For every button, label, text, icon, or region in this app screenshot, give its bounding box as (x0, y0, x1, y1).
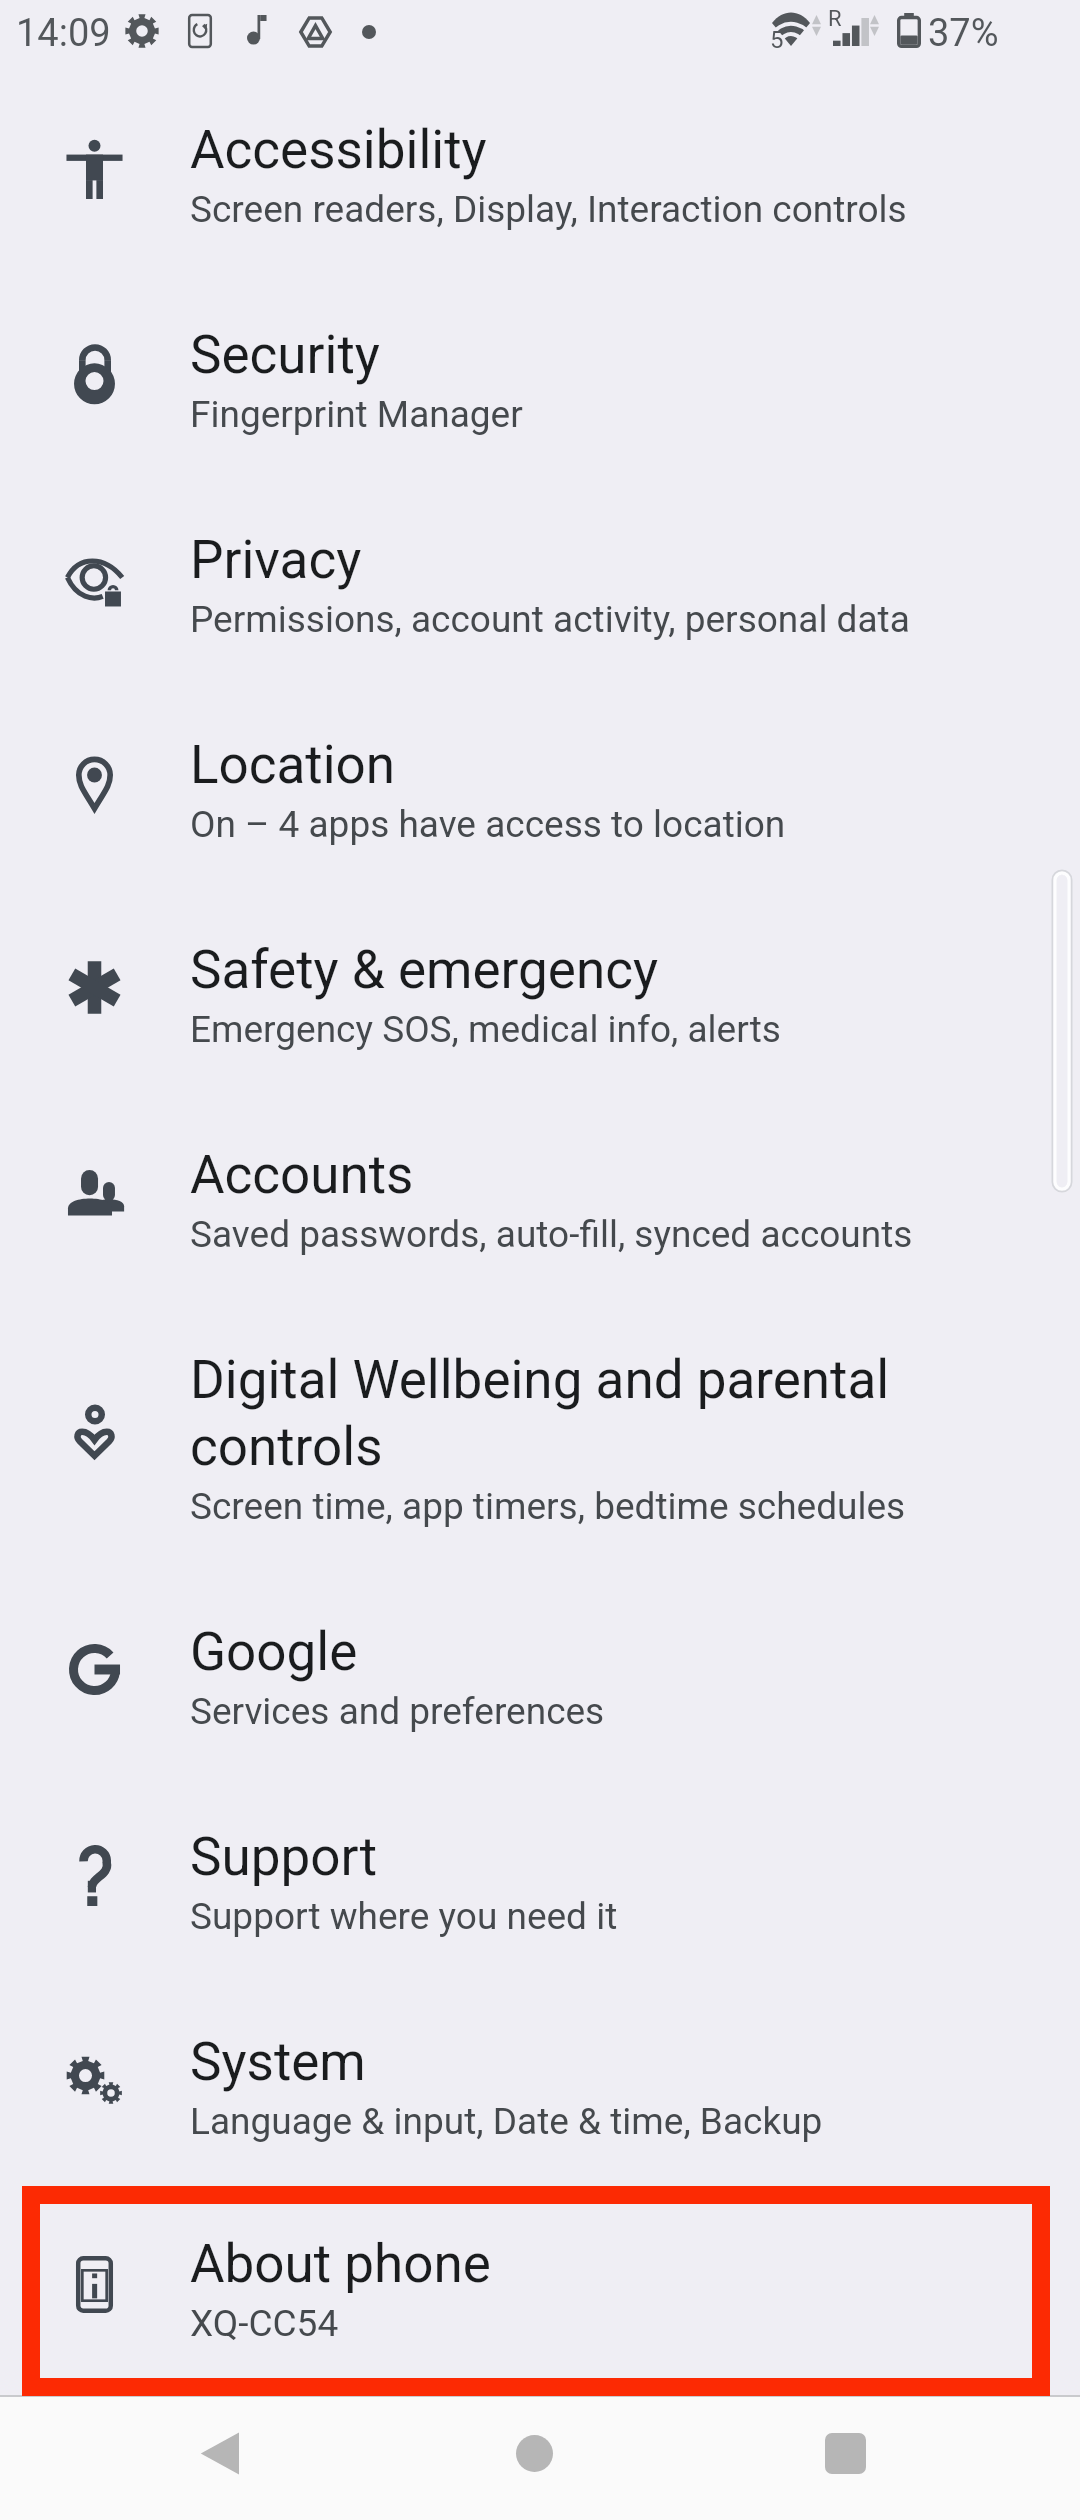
button[interactable]: Recents (795, 2403, 895, 2503)
button[interactable]: Digital Wellbeing and parental controls (0, 1301, 1080, 1573)
staticText: 14:09 (16, 11, 111, 56)
button[interactable]: Security (0, 276, 1080, 481)
staticText: Support (190, 1822, 906, 1889)
staticText: Safety & emergency (190, 935, 906, 1002)
button[interactable]: Accounts (0, 1096, 1080, 1301)
button[interactable]: Location (0, 686, 1080, 891)
button[interactable]: About phone (0, 2188, 1080, 2386)
staticText: Permissions, account activity, personal … (190, 592, 910, 642)
staticText: Google (190, 1617, 906, 1684)
staticText: Location (190, 730, 906, 797)
staticText: Language & input, Date & time, Backup (190, 2094, 823, 2144)
button[interactable]: Privacy (0, 481, 1080, 686)
staticText: About phone (190, 2229, 906, 2296)
button[interactable]: Safety & emergency (0, 891, 1080, 1096)
staticText: Support where you need it (190, 1889, 618, 1939)
button[interactable]: Accessibility (0, 71, 1080, 276)
staticText: R (828, 6, 842, 32)
staticText: Privacy (190, 525, 906, 592)
staticText: Saved passwords, auto-fill, synced accou… (190, 1207, 913, 1257)
button[interactable]: System (0, 1983, 1080, 2188)
button[interactable]: Back (169, 2403, 269, 2503)
staticText: 5 (770, 26, 784, 54)
staticText: System (190, 2027, 906, 2094)
staticText: Screen time, app timers, bedtime schedul… (190, 1479, 906, 1529)
staticText: Accessibility (190, 115, 906, 182)
staticText: Fingerprint Manager (190, 387, 523, 437)
button[interactable]: Support (0, 1778, 1080, 1983)
staticText: Accounts (190, 1140, 906, 1207)
staticText: 37% (928, 11, 999, 56)
staticText: Services and preferences (190, 1684, 605, 1734)
staticText: Screen readers, Display, Interaction con… (190, 182, 907, 232)
button[interactable]: Home (484, 2403, 584, 2503)
staticText: Digital Wellbeing and parental controls (190, 1345, 906, 1479)
button[interactable]: Google (0, 1573, 1080, 1778)
staticText: XQ-CC54 (190, 2296, 339, 2346)
staticText: Security (190, 320, 906, 387)
staticText: On – 4 apps have access to location (190, 797, 786, 847)
staticText: Emergency SOS, medical info, alerts (190, 1002, 781, 1052)
